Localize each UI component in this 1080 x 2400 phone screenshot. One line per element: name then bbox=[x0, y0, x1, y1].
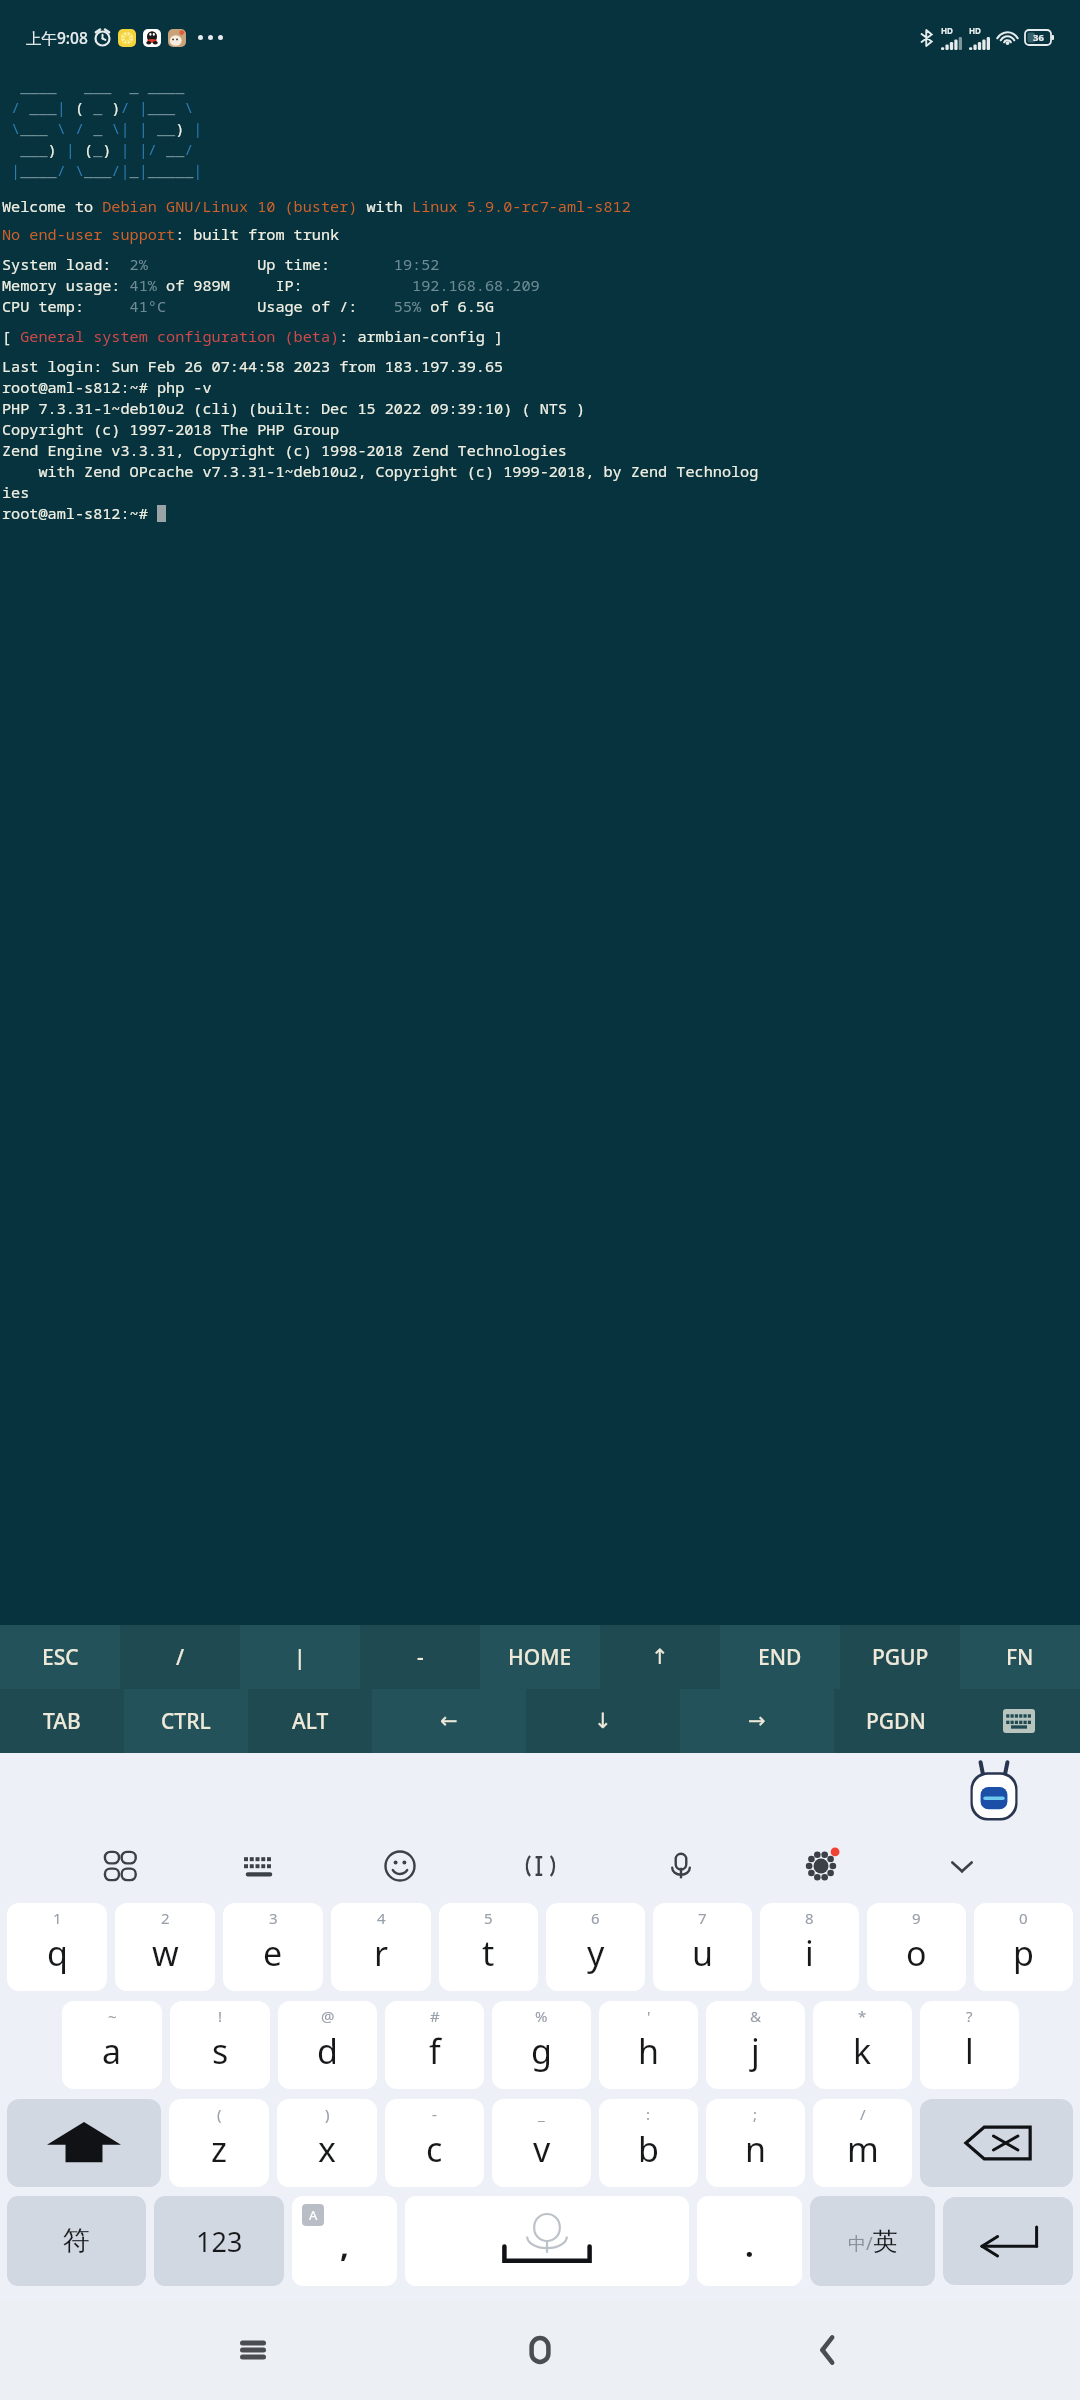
button[interactable]: / bbox=[813, 2099, 912, 2187]
button[interactable]: ALT bbox=[248, 1689, 372, 1753]
button[interactable]: _ bbox=[492, 2099, 591, 2187]
button[interactable]: FN bbox=[960, 1625, 1080, 1689]
staticText: END bbox=[758, 1643, 802, 1672]
staticText: CPU temp: 41°C Usage of /: 55% of 6.5G bbox=[2, 296, 495, 317]
staticText: # bbox=[430, 2006, 440, 2026]
staticText: 上午9:08 bbox=[26, 27, 88, 48]
staticText: PGUP bbox=[872, 1643, 929, 1672]
button[interactable]: Enter bbox=[943, 2197, 1073, 2285]
button[interactable]: Shift bbox=[7, 2099, 161, 2187]
staticText: & bbox=[750, 2006, 761, 2026]
button[interactable]: Text editing bbox=[518, 1844, 562, 1888]
staticText: 3 bbox=[269, 1908, 278, 1928]
button[interactable]: 3 bbox=[223, 1903, 323, 1991]
staticText: * bbox=[858, 2006, 867, 2026]
button[interactable]: 7 bbox=[653, 1903, 752, 1991]
staticText: ? bbox=[966, 2006, 973, 2026]
button[interactable]: % bbox=[492, 2001, 591, 2089]
button[interactable]: Settings bbox=[799, 1844, 843, 1888]
button[interactable]: Collapse keyboard bbox=[940, 1844, 984, 1888]
staticText: % bbox=[535, 2006, 548, 2026]
button[interactable]: : bbox=[599, 2099, 698, 2187]
staticText: / bbox=[860, 2104, 866, 2124]
button[interactable]: @ bbox=[278, 2001, 377, 2089]
staticText: ↓ bbox=[594, 1709, 612, 1733]
button[interactable]: Backspace bbox=[920, 2099, 1073, 2187]
staticText: s bbox=[212, 2028, 229, 2074]
staticText: g bbox=[531, 2028, 552, 2074]
staticText: m bbox=[847, 2126, 879, 2172]
button[interactable]: CTRL bbox=[124, 1689, 248, 1753]
button[interactable]: ↓ bbox=[526, 1689, 680, 1753]
button[interactable]: & bbox=[706, 2001, 805, 2089]
button[interactable]: Assistant bbox=[966, 1761, 1022, 1823]
button[interactable]: PGDN bbox=[834, 1689, 957, 1753]
staticText: o bbox=[906, 1930, 927, 1976]
staticText: / ___| ( _ )/ |___ \ bbox=[2, 97, 203, 118]
button[interactable]: # bbox=[385, 2001, 484, 2089]
staticText: j bbox=[751, 2028, 760, 2074]
button[interactable]: ESC bbox=[0, 1625, 120, 1689]
button[interactable]: 123 bbox=[154, 2196, 284, 2286]
staticText: CTRL bbox=[161, 1707, 211, 1736]
staticText: l bbox=[965, 2028, 974, 2074]
button[interactable]: Apps bbox=[97, 1844, 141, 1888]
button[interactable]: / bbox=[120, 1625, 240, 1689]
staticText: PGDN bbox=[866, 1707, 926, 1736]
button[interactable]: Keyboard layout bbox=[237, 1844, 281, 1888]
button[interactable]: . bbox=[697, 2196, 802, 2286]
button[interactable]: 1 bbox=[7, 1903, 107, 1991]
button[interactable]: 2 bbox=[115, 1903, 215, 1991]
button[interactable]: - bbox=[360, 1625, 480, 1689]
staticText: @ bbox=[321, 2006, 335, 2026]
button[interactable]: 6 bbox=[546, 1903, 645, 1991]
button[interactable]: ? bbox=[920, 2001, 1019, 2089]
button[interactable]: 4 bbox=[331, 1903, 431, 1991]
button[interactable]: 9 bbox=[867, 1903, 966, 1991]
staticText: ; bbox=[753, 2104, 758, 2124]
button[interactable]: Emoji bbox=[378, 1844, 422, 1888]
button[interactable]: Back bbox=[793, 2315, 863, 2385]
button[interactable]: TAB bbox=[0, 1689, 124, 1753]
button[interactable]: ' bbox=[599, 2001, 698, 2089]
button[interactable]: Recent apps bbox=[218, 2315, 288, 2385]
button[interactable]: ( bbox=[169, 2099, 269, 2187]
button[interactable]: 0 bbox=[974, 1903, 1073, 1991]
staticText: v bbox=[533, 2126, 551, 2172]
staticText: with Zend OPcache v7.3.31-1~deb10u2, Cop… bbox=[2, 461, 759, 482]
button[interactable]: | bbox=[240, 1625, 360, 1689]
button[interactable]: 符 bbox=[7, 2196, 146, 2286]
button[interactable]: - bbox=[385, 2099, 484, 2187]
button[interactable]: ) bbox=[277, 2099, 377, 2187]
button[interactable]: Hide keyboard bbox=[957, 1689, 1080, 1753]
button[interactable]: ; bbox=[706, 2099, 805, 2187]
button[interactable]: Voice input bbox=[659, 1844, 703, 1888]
button[interactable]: ← bbox=[372, 1689, 526, 1753]
staticText: - bbox=[417, 1643, 424, 1672]
button[interactable]: ↑ bbox=[600, 1625, 720, 1689]
button[interactable]: ~ bbox=[62, 2001, 162, 2089]
button[interactable]: 中/英 bbox=[810, 2196, 935, 2286]
staticText: a bbox=[102, 2028, 122, 2074]
button[interactable]: PGUP bbox=[840, 1625, 960, 1689]
button[interactable]: 5 bbox=[439, 1903, 538, 1991]
button[interactable]: ! bbox=[170, 2001, 270, 2089]
staticText: q bbox=[47, 1930, 68, 1976]
button[interactable]: → bbox=[680, 1689, 834, 1753]
staticText: p bbox=[1013, 1930, 1034, 1976]
button[interactable]: 8 bbox=[760, 1903, 859, 1991]
button[interactable]: Home bbox=[505, 2315, 575, 2385]
staticText: n bbox=[745, 2126, 767, 2172]
staticText: ies bbox=[2, 482, 30, 503]
staticText: x bbox=[318, 2126, 336, 2172]
button[interactable]: HOME bbox=[480, 1625, 600, 1689]
button[interactable]: A bbox=[292, 2196, 397, 2286]
staticText: FN bbox=[1006, 1643, 1034, 1672]
staticText: [ General system configuration (beta): a… bbox=[2, 326, 504, 347]
button[interactable]: * bbox=[813, 2001, 912, 2089]
button[interactable]: Space bbox=[405, 2196, 689, 2286]
staticText: 4 bbox=[377, 1908, 386, 1928]
staticText: c bbox=[426, 2126, 443, 2172]
staticText: t bbox=[482, 1930, 495, 1976]
button[interactable]: END bbox=[720, 1625, 840, 1689]
